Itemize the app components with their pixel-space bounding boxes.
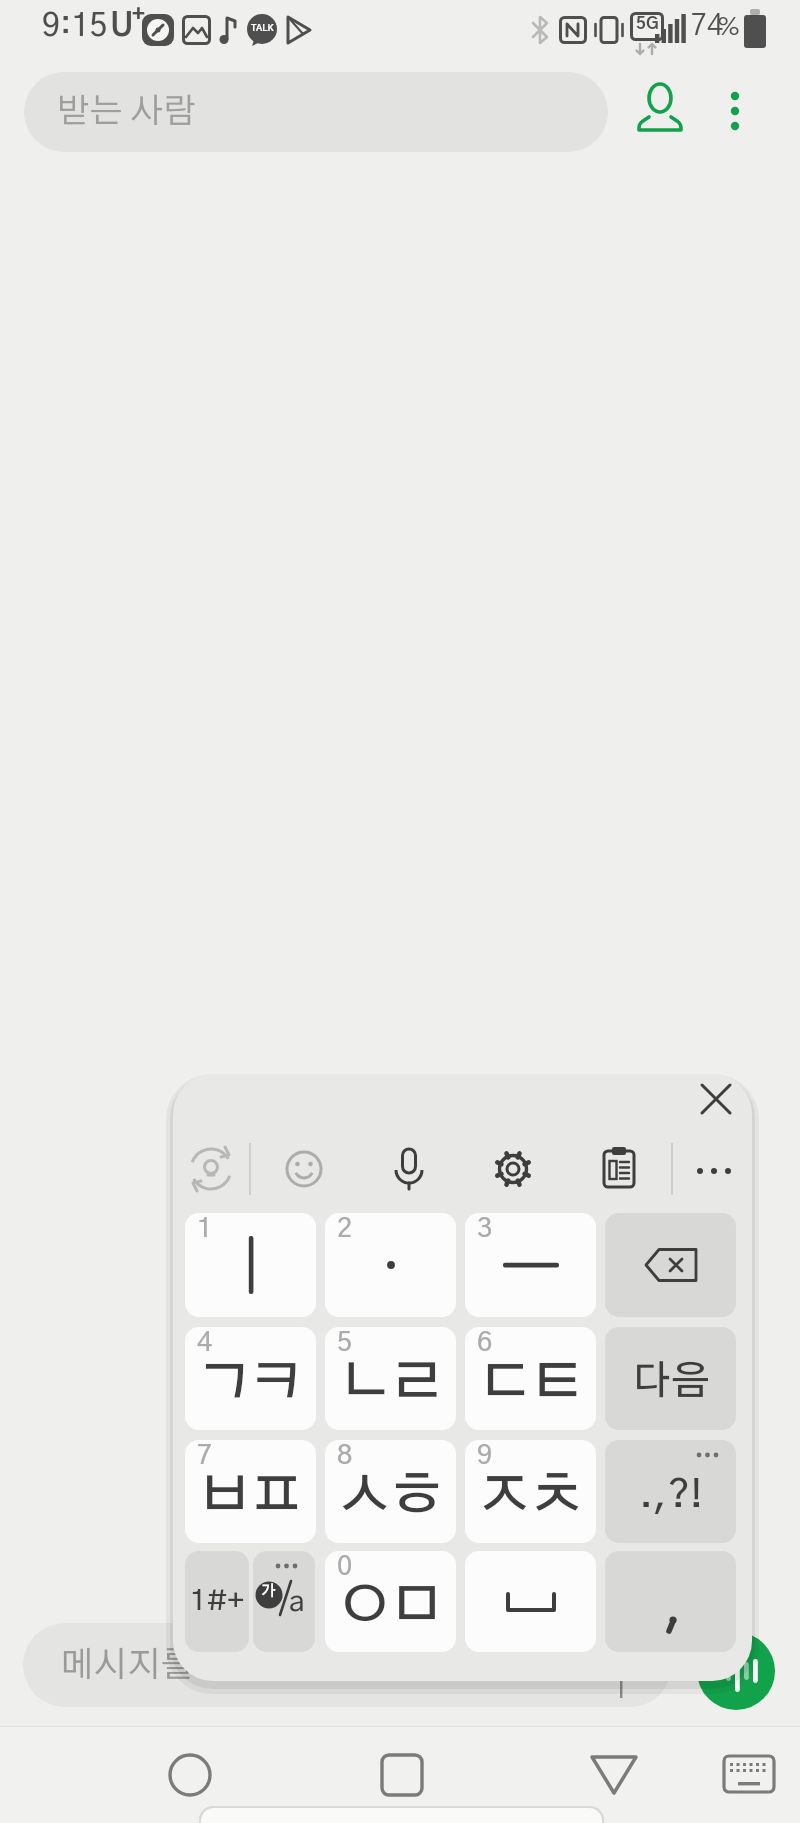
button[interactable] — [605, 1213, 736, 1317]
button[interactable]: 5 — [325, 1327, 456, 1430]
staticText: 3 — [477, 1215, 493, 1242]
button[interactable]: 7 — [185, 1440, 316, 1543]
button[interactable]: 6 — [465, 1327, 596, 1430]
button[interactable] — [697, 1632, 775, 1710]
button[interactable]: 0 — [325, 1551, 456, 1652]
staticText: 메시지를 입력하세요 — [60, 1648, 372, 1683]
button[interactable] — [593, 1143, 645, 1195]
button[interactable]: 9 — [465, 1440, 596, 1543]
staticText: 2 — [337, 1215, 353, 1242]
button[interactable] — [160, 1745, 220, 1805]
staticText: 8 — [337, 1442, 353, 1469]
staticText: ㄷㅌ — [479, 1355, 583, 1413]
staticText: 9 — [477, 1442, 493, 1469]
button[interactable] — [383, 1143, 435, 1195]
staticText: 다음 — [632, 1362, 710, 1402]
button[interactable] — [630, 79, 690, 139]
staticText: ㄴㄹ — [339, 1355, 443, 1413]
staticText: ㅈㅊ — [479, 1468, 583, 1526]
button[interactable] — [465, 1551, 596, 1652]
staticText: 4 — [197, 1329, 213, 1356]
staticText: 9:15 — [42, 10, 108, 42]
button[interactable] — [372, 1745, 432, 1805]
button[interactable] — [696, 1079, 736, 1119]
staticText: U — [110, 10, 134, 42]
staticText: TALK — [251, 24, 274, 33]
staticText: 5 — [337, 1329, 353, 1356]
staticText: 받는 사람 — [57, 95, 196, 129]
staticText: ㅅㅎ — [339, 1468, 443, 1526]
staticText: ㄱㅋ — [199, 1355, 303, 1413]
staticText: 5G — [636, 15, 659, 32]
button[interactable]: 메시지를 입력하세요 — [23, 1623, 672, 1707]
staticText: .,?! — [639, 1475, 703, 1515]
staticText: 6 — [477, 1329, 493, 1356]
button[interactable]: 4 — [185, 1327, 316, 1430]
staticText: 가 — [261, 1584, 276, 1599]
staticText: + — [132, 4, 145, 26]
button[interactable] — [584, 1745, 644, 1805]
staticText: 74 — [691, 12, 724, 41]
button[interactable] — [722, 1750, 776, 1800]
staticText: 0 — [337, 1553, 353, 1580]
button[interactable] — [605, 1551, 736, 1652]
staticText: 7 — [197, 1442, 213, 1469]
button[interactable] — [714, 82, 756, 142]
staticText: % — [717, 16, 741, 40]
button[interactable]: 1#+ — [185, 1551, 249, 1652]
button[interactable]: .,?! — [605, 1440, 736, 1543]
button[interactable]: 다음 — [605, 1327, 736, 1430]
button[interactable] — [487, 1143, 539, 1195]
button[interactable]: 2 — [325, 1213, 456, 1317]
button[interactable] — [688, 1155, 740, 1187]
button[interactable]: 받는 사람 — [24, 72, 608, 152]
button[interactable]: 1 — [185, 1213, 316, 1317]
button[interactable]: 가 — [253, 1551, 315, 1652]
button[interactable] — [278, 1143, 330, 1195]
button[interactable] — [185, 1143, 237, 1195]
button[interactable]: 8 — [325, 1440, 456, 1543]
staticText: a — [289, 1589, 305, 1617]
staticText: ㅂㅍ — [199, 1468, 303, 1526]
staticText: ㅇㅁ — [339, 1578, 443, 1636]
button[interactable]: 3 — [465, 1213, 596, 1317]
staticText: 1 — [197, 1215, 213, 1242]
staticText: 1#+ — [190, 1587, 244, 1616]
